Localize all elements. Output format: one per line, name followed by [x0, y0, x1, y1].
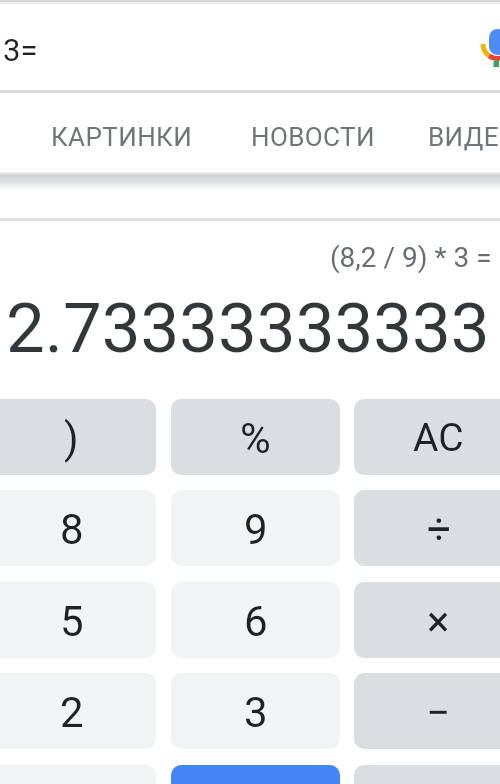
staticText: − — [426, 688, 451, 737]
button[interactable]: % — [171, 399, 340, 475]
staticText: 9 — [244, 505, 268, 554]
staticText: ) — [64, 414, 79, 463]
staticText: КАРТИНКИ — [51, 122, 193, 152]
button[interactable]: AC — [354, 399, 500, 475]
button[interactable]: + — [354, 765, 500, 784]
staticText: ÷ — [427, 505, 451, 554]
button[interactable]: ÷ — [354, 490, 500, 566]
staticText: 8 — [60, 505, 84, 554]
staticText: 3 — [244, 688, 268, 737]
button[interactable]: 3 — [171, 673, 340, 749]
button[interactable]: = — [171, 765, 340, 784]
button[interactable] — [465, 2, 500, 88]
staticText: 6 — [244, 597, 268, 646]
button[interactable]: × — [354, 582, 500, 658]
button[interactable]: 8 — [0, 490, 156, 566]
button[interactable]: 5 — [0, 582, 156, 658]
staticText: НОВОСТИ — [251, 122, 375, 152]
button[interactable]: 9 — [171, 490, 340, 566]
button[interactable]: 2 — [0, 673, 156, 749]
staticText: 5 — [60, 597, 84, 646]
button[interactable]: 6 — [171, 582, 340, 658]
staticText: AC — [413, 415, 464, 461]
staticText: 2 — [60, 688, 84, 737]
staticText: ВИДЕО — [428, 122, 500, 152]
staticText: % — [240, 414, 271, 463]
staticText: 2.73333333333 — [6, 288, 490, 369]
button[interactable]: 3= — [0, 4, 460, 88]
button[interactable]: ) — [0, 399, 156, 475]
button[interactable]: НОВОСТИ — [240, 95, 380, 172]
button[interactable]: − — [354, 673, 500, 749]
button[interactable]: ВИДЕО — [417, 95, 500, 172]
staticText: (8,2 / 9) * 3 = — [330, 241, 492, 274]
staticText: 3= — [3, 32, 38, 68]
staticText: × — [427, 597, 450, 646]
button[interactable]: КАРТИНКИ — [40, 95, 200, 172]
